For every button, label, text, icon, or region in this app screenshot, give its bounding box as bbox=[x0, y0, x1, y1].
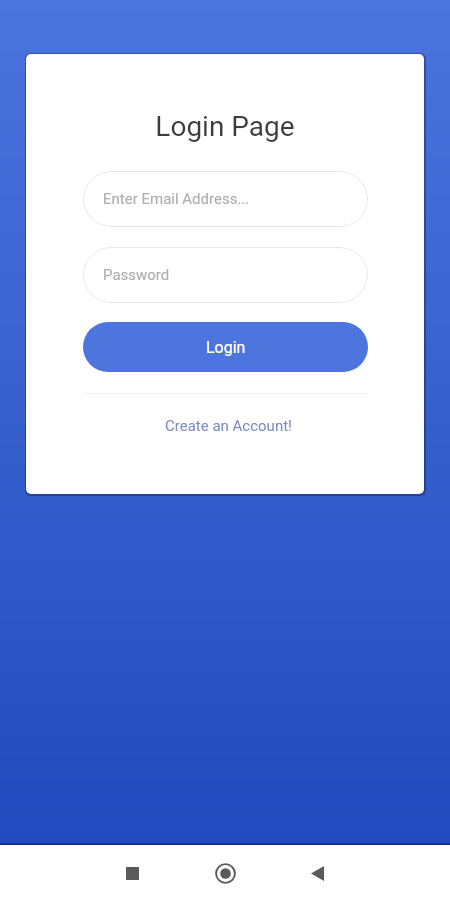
button[interactable]: Enter Email Address... bbox=[83, 171, 368, 227]
staticText: Password bbox=[103, 266, 170, 284]
button[interactable]: Login bbox=[83, 322, 368, 372]
staticText: Enter Email Address... bbox=[103, 190, 250, 208]
button[interactable]: Create an Account! bbox=[29, 414, 427, 438]
staticText: Login bbox=[206, 338, 246, 357]
button[interactable]: Recent apps bbox=[112, 853, 153, 894]
staticText: Create an Account! bbox=[165, 417, 292, 435]
button[interactable]: Back bbox=[297, 853, 338, 894]
button[interactable]: Password bbox=[83, 247, 368, 303]
staticText: Login Page bbox=[155, 110, 295, 143]
button[interactable]: Home bbox=[205, 853, 246, 894]
